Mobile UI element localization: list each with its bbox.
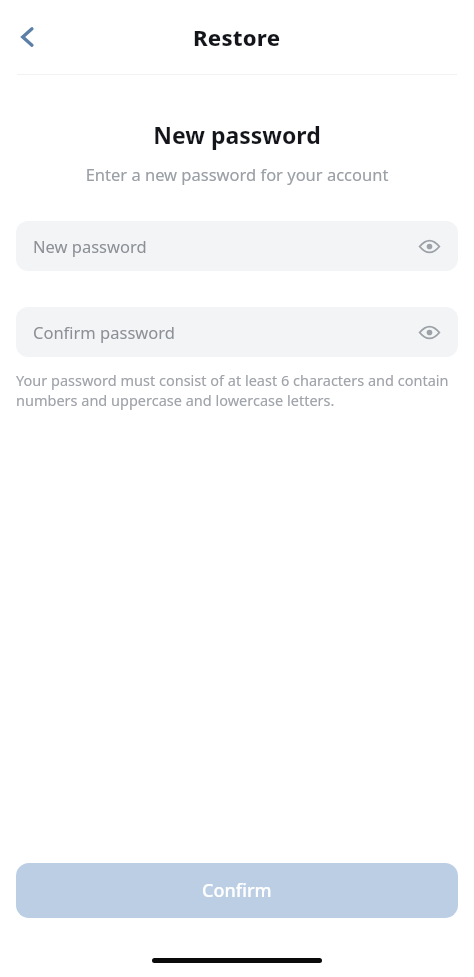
staticText: New password <box>33 235 416 257</box>
staticText: Confirm <box>202 878 272 903</box>
button[interactable]: Show password <box>416 233 442 259</box>
button[interactable]: Confirm <box>16 863 458 918</box>
button[interactable]: Back <box>8 17 48 57</box>
staticText: Restore <box>193 22 281 52</box>
staticText: New password <box>0 119 474 150</box>
staticText: Confirm password <box>33 321 416 343</box>
button[interactable]: Show password <box>416 319 442 345</box>
staticText: Enter a new password for your account <box>0 163 474 185</box>
button[interactable]: New password <box>16 221 458 271</box>
button[interactable]: Confirm password <box>16 307 458 357</box>
staticText: Your password must consist of at least 6… <box>16 370 458 411</box>
